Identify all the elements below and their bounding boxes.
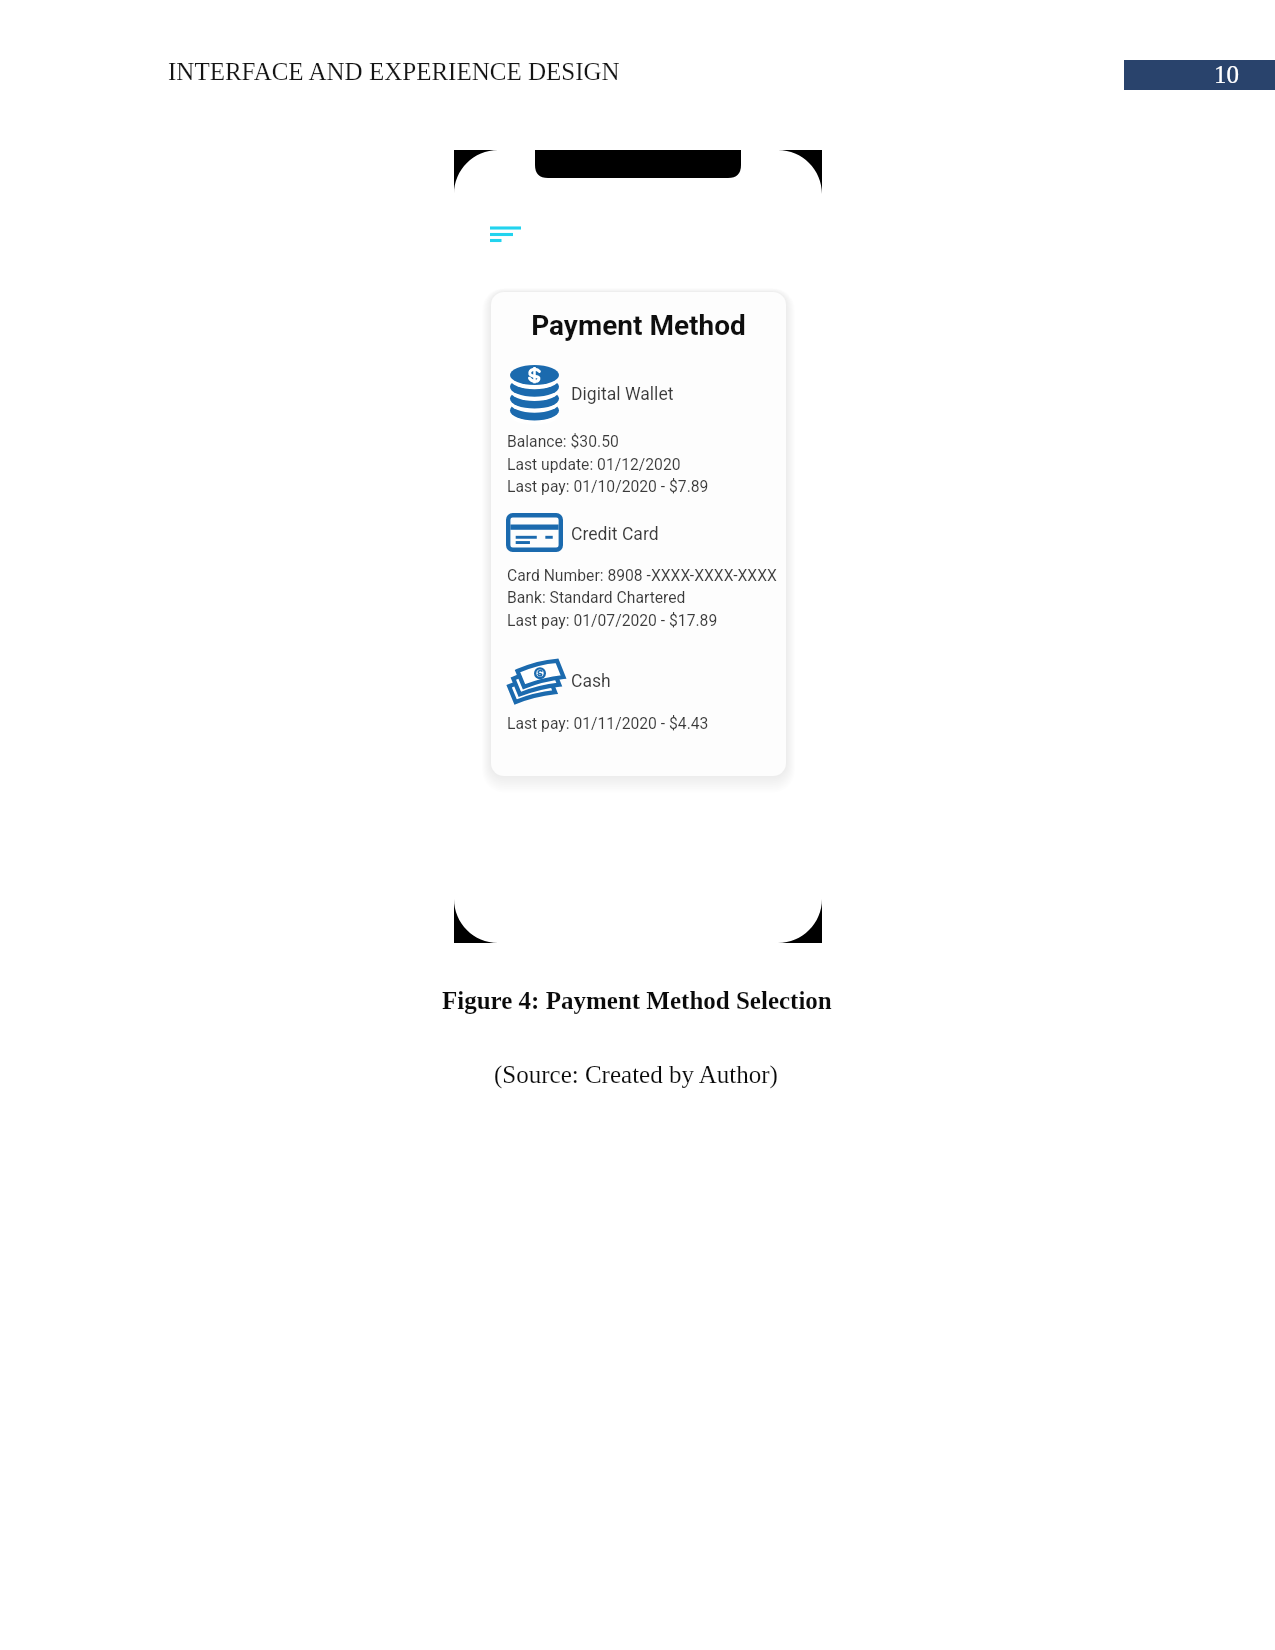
staticText: Bank: Standard Chartered: [507, 588, 686, 606]
staticText: Last pay: 01/07/2020 - $17.89: [507, 611, 718, 629]
button[interactable]: Cash: [505, 655, 771, 707]
staticText: Payment Method: [491, 309, 786, 342]
button[interactable]: Sort payment methods: [484, 220, 532, 252]
staticText: (Source: Created by Author): [494, 1061, 778, 1089]
staticText: Card Number: 8908 -XXXX-XXXX-XXXX: [507, 566, 777, 584]
staticText: Last pay: 01/11/2020 - $4.43: [507, 714, 709, 732]
staticText: Last pay: 01/10/2020 - $7.89: [507, 477, 709, 495]
staticText: Cash: [571, 671, 611, 692]
staticText: 10: [1214, 61, 1239, 89]
button[interactable]: Digital Wallet: [505, 361, 771, 421]
staticText: Credit Card: [571, 524, 659, 545]
staticText: Figure 4: Payment Method Selection: [442, 987, 832, 1015]
staticText: Last update: 01/12/2020: [507, 455, 681, 473]
staticText: Balance: $30.50: [507, 432, 619, 450]
staticText: Digital Wallet: [571, 384, 674, 405]
button[interactable]: Credit Card: [505, 509, 771, 555]
staticText: INTERFACE AND EXPERIENCE DESIGN: [168, 58, 620, 86]
